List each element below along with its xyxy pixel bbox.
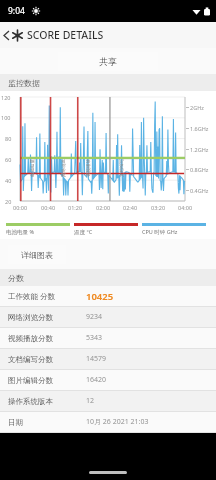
staticText: 视频播放分数 [8,334,78,343]
staticText: 80 [5,135,12,142]
staticText: 分数 [8,273,24,283]
staticText: 温度 °C [74,228,93,236]
staticText: 文档编写 [119,159,125,177]
staticText: 文档编写分数 [8,355,78,364]
staticText: 监控数据 [8,78,40,88]
button[interactable]: Back [0,22,12,48]
staticText: 10月 26 2021 21:03 [86,417,149,427]
staticText: 2GHz [190,104,204,111]
staticText: 100 [1,114,11,121]
button[interactable]: 详细图表 [8,245,66,264]
staticText: 网络浏览分数 [8,313,78,322]
staticText: 9:04 [8,5,25,17]
staticText: 电池电量 % [6,228,35,236]
staticText: 04:00 [178,204,193,211]
staticText: 详细图表 [21,250,53,260]
staticText: 工作效能 分数 [8,291,78,301]
staticText: CPU 时钟 GHz [142,228,178,236]
staticText: 1.2GHz [190,146,209,153]
staticText: 电池电量 [30,159,36,177]
staticText: 操作系统版本 [8,397,78,406]
button[interactable]: 视频播放分数 [0,328,216,348]
button[interactable]: 共享 [58,52,158,71]
staticText: 01:20 [68,204,83,211]
staticText: 5343 [86,333,103,343]
staticText: 0.8GHz [190,166,209,173]
staticText: 10425 [86,290,114,303]
staticText: 共享 [99,56,117,67]
staticText: 40 [5,177,12,184]
staticText: 03:20 [151,204,166,211]
staticText: SCORE DETAILS [27,28,104,42]
staticText: 9234 [86,312,103,322]
staticText: 14579 [86,354,107,364]
staticText: 02:00 [96,204,111,211]
staticText: 0.4GHz [190,187,209,194]
staticText: 00:00 [13,204,28,211]
staticText: 60 [5,156,12,163]
staticText: 02:40 [123,204,138,211]
staticText: 1.6GHz [190,125,209,132]
button[interactable]: 日期 [0,412,216,432]
button[interactable]: 网络浏览分数 [0,307,216,327]
staticText: 16420 [86,375,107,385]
staticText: 120 [1,94,11,101]
staticText: 图片编辑分数 [8,376,78,385]
button[interactable]: 图片编辑分数 [0,370,216,390]
button[interactable]: 文档编写分数 [0,349,216,369]
staticText: 20 [5,198,12,205]
staticText: 12 [86,396,95,406]
button[interactable]: 操作系统版本 [0,391,216,411]
button[interactable]: 工作效能 分数 [0,286,216,306]
staticText: 网络浏览 [61,159,67,177]
staticText: 00:40 [41,204,56,211]
staticText: 视频播放 [86,159,92,177]
staticText: 日期 [8,418,78,427]
